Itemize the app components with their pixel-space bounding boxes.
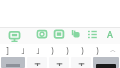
staticText: ) xyxy=(51,45,54,56)
button[interactable] xyxy=(71,57,91,68)
staticText: ) xyxy=(96,45,99,56)
button[interactable]: Media xyxy=(53,28,65,40)
button[interactable]: ) xyxy=(90,44,105,56)
button[interactable]: ︿ xyxy=(105,44,120,56)
button[interactable] xyxy=(49,57,69,68)
button[interactable]: Clipboard xyxy=(8,30,20,42)
button[interactable]: Symbols xyxy=(1,57,25,68)
button[interactable]: Camera xyxy=(36,28,48,40)
staticText: ｣ xyxy=(21,46,25,54)
button[interactable]: ｣ xyxy=(15,44,30,56)
button[interactable]: ｣ xyxy=(30,44,45,56)
staticText: ) xyxy=(66,45,69,56)
staticText: A xyxy=(107,28,113,40)
staticText: ] xyxy=(6,45,9,56)
button[interactable] xyxy=(27,57,47,68)
button[interactable]: Enter xyxy=(93,57,119,68)
button[interactable]: Handwriting xyxy=(70,28,82,40)
staticText: ︿ xyxy=(110,46,116,54)
staticText: ｣ xyxy=(36,46,40,54)
button[interactable]: ) xyxy=(45,44,60,56)
button[interactable]: Text list xyxy=(87,28,99,40)
button[interactable]: ] xyxy=(0,44,15,56)
button[interactable]: ) xyxy=(60,44,75,56)
staticText: ) xyxy=(81,45,84,56)
button[interactable]: Text style xyxy=(104,28,116,40)
button[interactable]: ) xyxy=(75,44,90,56)
